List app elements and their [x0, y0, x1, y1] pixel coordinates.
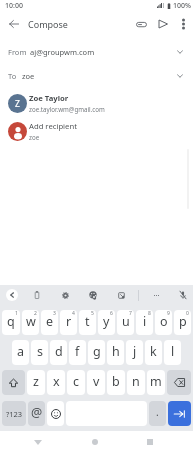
- button[interactable]: Voice typing off: [176, 288, 190, 302]
- button[interactable]: g: [88, 340, 105, 365]
- staticText: 7: [129, 310, 132, 317]
- staticText: f: [75, 343, 80, 360]
- button[interactable]: j: [126, 340, 143, 365]
- button[interactable]: k: [145, 340, 162, 365]
- staticText: ?123: [6, 409, 23, 419]
- button[interactable]: w: [22, 310, 39, 335]
- staticText: 9: [167, 310, 170, 317]
- staticText: 4: [72, 310, 75, 317]
- button[interactable]: v: [87, 370, 105, 395]
- button[interactable]: f: [69, 340, 86, 365]
- button[interactable]: To: [0, 66, 193, 86]
- staticText: 8: [148, 310, 151, 317]
- staticText: 5: [91, 310, 94, 317]
- staticText: 10:00: [5, 1, 23, 11]
- staticText: l: [171, 343, 175, 360]
- button[interactable]: s: [31, 340, 48, 365]
- button[interactable]: Emoji: [47, 401, 64, 426]
- button[interactable]: Back: [4, 14, 24, 34]
- staticText: i: [143, 313, 147, 330]
- staticText: a: [17, 343, 25, 360]
- button[interactable]: z: [27, 370, 45, 395]
- staticText: aj@groupwm.com: [30, 47, 95, 57]
- button[interactable]: Home: [85, 432, 105, 452]
- button[interactable]: Clipboard: [30, 288, 44, 302]
- button[interactable]: Z: [0, 90, 193, 116]
- button[interactable]: Themes: [86, 288, 100, 302]
- button[interactable]: Recents: [140, 432, 160, 452]
- staticText: x: [53, 373, 60, 390]
- button[interactable]: More: [149, 288, 163, 302]
- staticText: u: [122, 313, 130, 330]
- staticText: n: [132, 373, 140, 390]
- staticText: p: [179, 313, 187, 330]
- button[interactable]: q: [2, 310, 20, 335]
- button[interactable]: l: [164, 340, 181, 365]
- button[interactable]: h: [107, 340, 124, 365]
- button[interactable]: r: [60, 310, 77, 335]
- button[interactable]: Screenshot: [114, 288, 128, 302]
- button[interactable]: b: [107, 370, 125, 395]
- button[interactable]: n: [127, 370, 145, 395]
- staticText: Add recipient: [29, 121, 77, 131]
- button[interactable]: Expand toolbar: [6, 289, 18, 301]
- button[interactable]: Send: [152, 13, 174, 35]
- staticText: w: [26, 313, 36, 330]
- staticText: zoe.taylor.wm@gmail.com: [29, 105, 105, 113]
- button[interactable]: y: [98, 310, 115, 335]
- staticText: 1: [15, 310, 18, 317]
- button[interactable]: Add recipient: [0, 118, 193, 144]
- staticText: v: [93, 373, 100, 390]
- staticText: Z: [15, 98, 20, 110]
- staticText: Zoe Taylor: [29, 93, 69, 103]
- button[interactable]: ?123: [2, 401, 26, 426]
- button[interactable]: d: [50, 340, 67, 365]
- button[interactable]: Attach file: [130, 13, 152, 35]
- staticText: j: [133, 343, 137, 360]
- button[interactable]: Settings: [58, 288, 72, 302]
- staticText: 6: [110, 310, 113, 317]
- staticText: y: [103, 313, 110, 330]
- button[interactable]: From: [0, 42, 193, 62]
- button[interactable]: More options: [172, 13, 193, 35]
- staticText: z: [33, 373, 39, 390]
- staticText: 2: [34, 310, 37, 317]
- staticText: s: [37, 343, 43, 360]
- staticText: zoe: [22, 71, 35, 81]
- staticText: d: [55, 343, 63, 360]
- staticText: From: [8, 47, 27, 57]
- staticText: To: [8, 71, 17, 81]
- button[interactable]: x: [47, 370, 65, 395]
- staticText: r: [66, 313, 72, 330]
- staticText: m: [150, 373, 162, 390]
- button[interactable]: Back: [28, 432, 48, 452]
- staticText: 3: [53, 310, 56, 317]
- staticText: t: [85, 313, 90, 330]
- button[interactable]: e: [41, 310, 58, 335]
- staticText: 100%: [173, 1, 191, 11]
- staticText: @: [31, 404, 43, 421]
- button[interactable]: Delete: [167, 370, 191, 395]
- staticText: q: [7, 313, 15, 330]
- button[interactable]: a: [12, 340, 29, 365]
- button[interactable]: p: [174, 310, 191, 335]
- staticText: h: [112, 343, 120, 360]
- button[interactable]: Enter: [168, 401, 191, 426]
- button[interactable]: o: [155, 310, 172, 335]
- staticText: g: [93, 343, 101, 360]
- button[interactable]: m: [147, 370, 165, 395]
- button[interactable]: Shift: [2, 370, 25, 395]
- button[interactable]: c: [67, 370, 85, 395]
- button[interactable]: u: [117, 310, 134, 335]
- staticText: k: [150, 343, 157, 360]
- button[interactable]: @: [28, 401, 45, 426]
- staticText: .: [156, 405, 159, 419]
- button[interactable]: i: [136, 310, 153, 335]
- staticText: 0: [186, 310, 189, 317]
- staticText: zoe: [29, 133, 40, 141]
- staticText: e: [46, 313, 54, 330]
- staticText: c: [73, 373, 80, 390]
- button[interactable]: .: [149, 401, 166, 426]
- button[interactable]: t: [79, 310, 96, 335]
